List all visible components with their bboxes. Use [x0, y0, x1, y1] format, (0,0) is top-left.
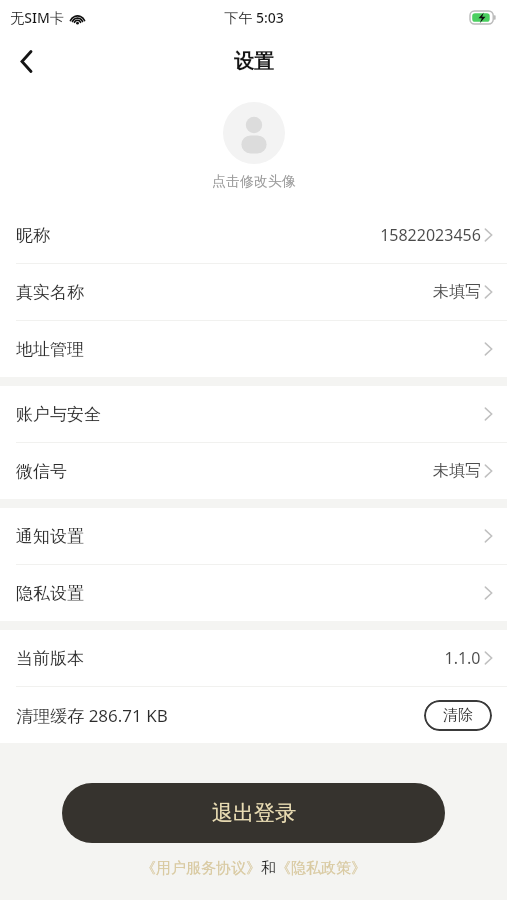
- button[interactable]: 通知设置: [0, 508, 507, 564]
- button[interactable]: 清除: [424, 700, 492, 731]
- button[interactable]: 地址管理: [0, 321, 507, 377]
- staticText: 昵称: [16, 225, 50, 246]
- staticText: 真实名称: [16, 282, 84, 303]
- staticText: 点击修改头像: [212, 173, 296, 191]
- button[interactable]: 当前版本: [0, 630, 507, 686]
- staticText: 15822023456: [380, 224, 481, 246]
- button[interactable]: 真实名称: [0, 264, 507, 320]
- button[interactable]: 点击修改头像: [0, 88, 507, 207]
- button[interactable]: 《用户服务协议》: [141, 859, 261, 878]
- staticText: 下午 5:03: [224, 8, 284, 27]
- staticText: 未填写: [433, 282, 481, 302]
- button[interactable]: 微信号: [0, 443, 507, 499]
- staticText: 隐私设置: [16, 583, 84, 604]
- staticText: 《隐私政策》: [276, 859, 366, 878]
- staticText: 和: [261, 859, 276, 878]
- staticText: 1.1.0: [444, 647, 481, 669]
- button[interactable]: 隐私设置: [0, 565, 507, 621]
- staticText: 清除: [443, 706, 473, 725]
- staticText: 设置: [234, 49, 274, 74]
- staticText: 清理缓存 286.71 KB: [16, 704, 168, 727]
- staticText: 无SIM卡: [10, 8, 64, 27]
- button[interactable]: 退出登录: [62, 783, 445, 843]
- button[interactable]: 账户与安全: [0, 386, 507, 442]
- staticText: 微信号: [16, 461, 67, 482]
- staticText: 账户与安全: [16, 404, 101, 425]
- staticText: 未填写: [433, 461, 481, 481]
- staticText: 《用户服务协议》: [141, 859, 261, 878]
- staticText: 地址管理: [16, 339, 84, 360]
- button[interactable]: 昵称: [0, 207, 507, 263]
- button[interactable]: 《隐私政策》: [276, 859, 366, 878]
- staticText: 通知设置: [16, 526, 84, 547]
- staticText: 退出登录: [212, 800, 296, 826]
- staticText: 当前版本: [16, 648, 84, 669]
- button[interactable]: Back: [0, 35, 52, 87]
